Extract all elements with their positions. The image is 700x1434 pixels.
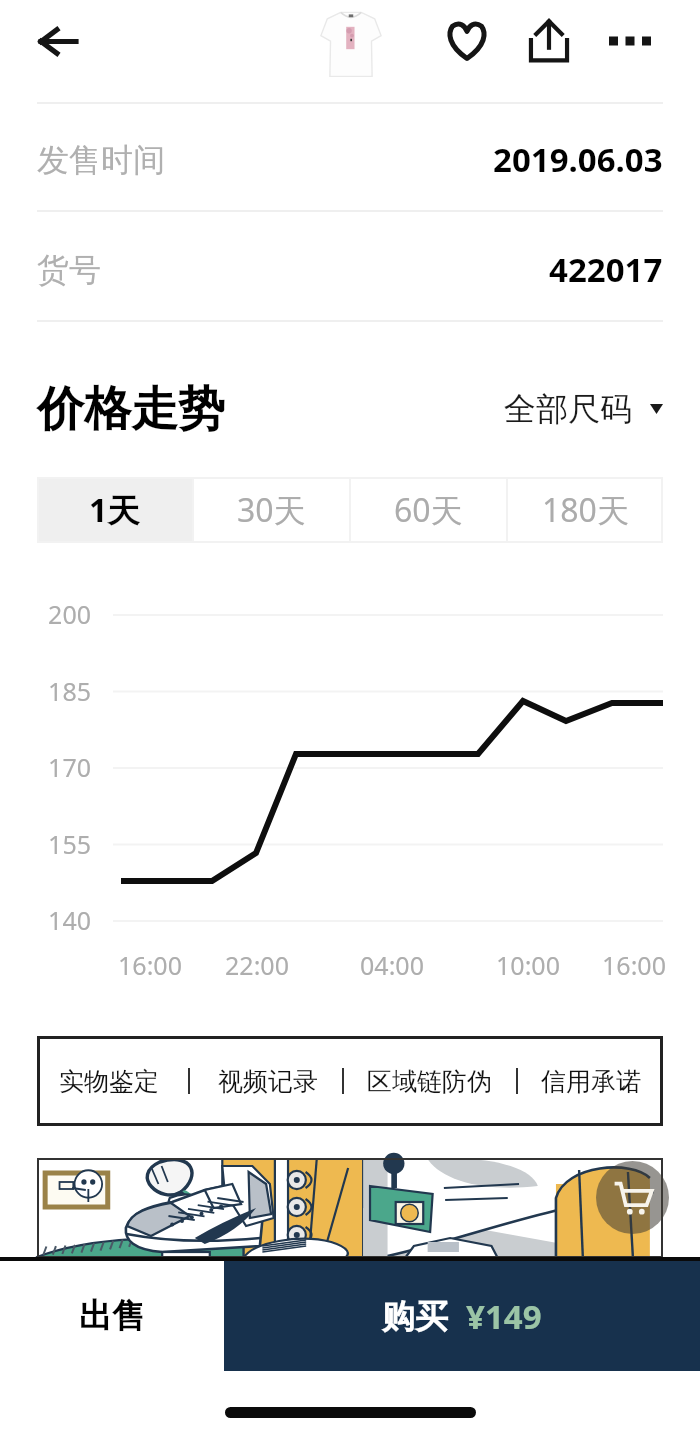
staticText: 全部尺码 [504,389,632,429]
button[interactable]: 180天 [508,477,663,543]
staticText: 04:00 [332,948,452,982]
staticText: 22:00 [197,948,317,982]
staticText: 200 [30,597,91,631]
staticText: 购买 [382,1296,448,1338]
button[interactable]: 购买 [224,1261,700,1371]
staticText: 180天 [542,488,629,532]
staticText: 实物鉴定 [59,1066,159,1097]
button[interactable] [37,1158,663,1258]
button[interactable]: 60天 [351,477,506,543]
staticText: 1天 [89,488,140,532]
staticText: ¥149 [466,1294,542,1339]
button[interactable]: 实物鉴定 [37,1036,663,1126]
staticText: 10:00 [468,948,588,982]
staticText: 30天 [237,488,306,532]
staticText: 价格走势 [37,380,225,439]
staticText: 发售时间 [37,140,165,180]
staticText: 155 [30,827,91,861]
staticText: 2019.06.03 [493,137,663,182]
button[interactable]: Shopping cart [596,1161,669,1234]
staticText: 185 [30,674,91,708]
button[interactable]: 30天 [194,477,349,543]
staticText: 视频记录 [218,1066,318,1097]
staticText: 422017 [549,247,663,292]
button[interactable]: 1天 [37,477,192,543]
button[interactable]: 货号 [0,215,700,324]
staticText: 区域链防伪 [367,1066,492,1097]
staticText: 信用承诺 [541,1066,641,1097]
button[interactable]: 全部尺码 [504,379,663,439]
button[interactable]: More options [595,6,665,76]
button[interactable]: 发售时间 [0,106,700,213]
button[interactable]: Favorite [432,6,502,76]
staticText: 16:00 [574,948,694,982]
button[interactable]: Share [514,6,584,76]
staticText: 170 [30,750,91,784]
button[interactable]: Back [21,7,95,75]
staticText: 出售 [79,1295,145,1337]
button[interactable]: 出售 [0,1261,224,1371]
staticText: 16:00 [90,948,210,982]
staticText: 140 [30,903,91,937]
staticText: 货号 [37,250,101,290]
staticText: 60天 [394,488,463,532]
